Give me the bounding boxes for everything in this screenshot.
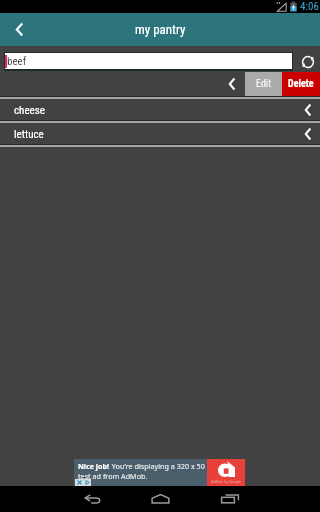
- staticText: 4:06: [300, 0, 319, 13]
- staticText: Nice job!: [78, 461, 110, 471]
- button[interactable]: beef: [5, 53, 292, 69]
- button[interactable]: Refresh: [295, 49, 320, 74]
- staticText: AdMob by Google: [211, 479, 242, 484]
- button[interactable]: Edit: [245, 72, 282, 96]
- button[interactable]: lettuce: [0, 123, 320, 144]
- staticText: my pantry: [135, 22, 186, 37]
- button[interactable]: Delete: [282, 72, 320, 96]
- staticText: Edit: [256, 78, 272, 90]
- button[interactable]: Back: [0, 13, 38, 46]
- button[interactable]: cheese: [0, 99, 320, 120]
- staticText: Delete: [288, 78, 314, 90]
- button[interactable]: Home: [126, 486, 194, 512]
- button[interactable]: Recents: [195, 486, 264, 512]
- button[interactable]: Back: [58, 486, 126, 512]
- staticText: lettuce: [14, 128, 44, 141]
- button[interactable]: Nice job!: [74, 459, 245, 486]
- staticText: beef: [7, 55, 27, 68]
- staticText: You're displaying a 320 x 50: [110, 461, 205, 471]
- button[interactable]: Previous: [219, 72, 245, 96]
- staticText: test ad from AdMob.: [78, 471, 148, 481]
- staticText: cheese: [14, 104, 45, 117]
